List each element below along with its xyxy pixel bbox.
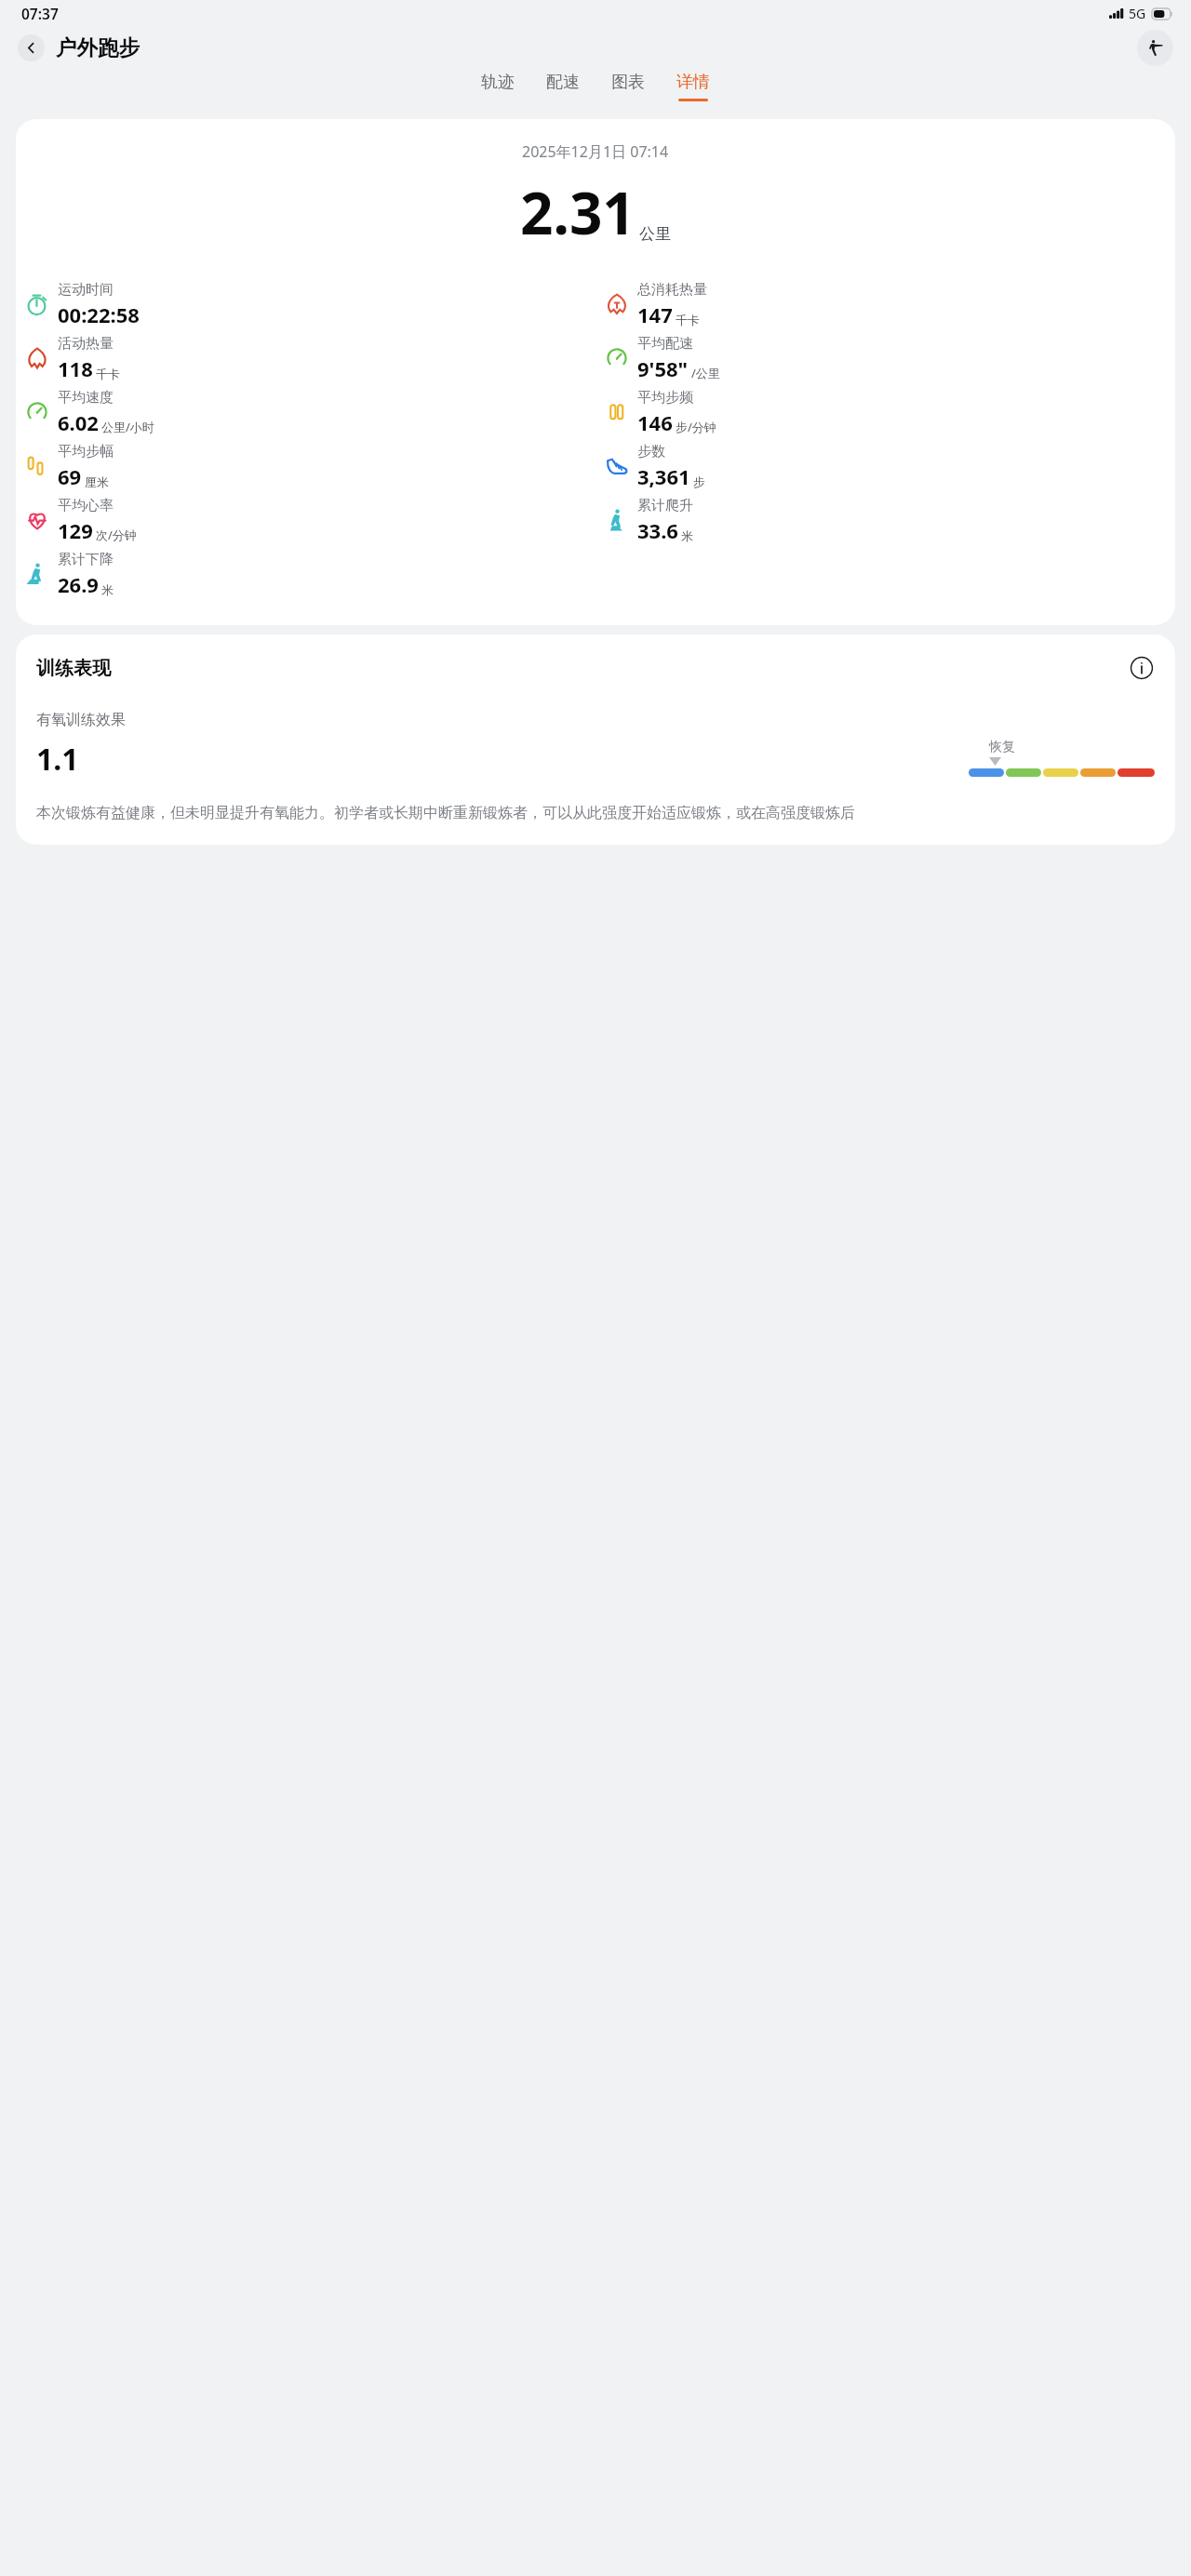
staticText: 2.31 bbox=[520, 173, 636, 251]
button[interactable]: 运动时间 bbox=[16, 277, 595, 331]
staticText: 147 bbox=[637, 300, 673, 328]
staticText: 米 bbox=[681, 528, 693, 543]
staticText: 07:37 bbox=[21, 4, 59, 23]
staticText: 详情 bbox=[676, 72, 710, 93]
staticText: 26.9 bbox=[58, 570, 99, 598]
button[interactable]: 轨迹 bbox=[481, 69, 515, 99]
staticText: 33.6 bbox=[637, 516, 678, 544]
staticText: 有氧训练效果 bbox=[36, 711, 126, 729]
staticText: 户外跑步 bbox=[56, 34, 140, 60]
staticText: 5G bbox=[1129, 5, 1146, 22]
button[interactable]: 平均配速 bbox=[595, 331, 1175, 385]
button[interactable]: 平均速度 bbox=[16, 385, 595, 439]
staticText: 累计下降 bbox=[58, 551, 114, 568]
staticText: 次/分钟 bbox=[96, 527, 137, 543]
staticText: 千卡 bbox=[96, 367, 120, 381]
button[interactable]: 步数 bbox=[595, 439, 1175, 493]
button[interactable]: 平均步幅 bbox=[16, 439, 595, 493]
button[interactable]: 平均心率 bbox=[16, 493, 595, 547]
staticText: 146 bbox=[637, 408, 673, 436]
staticText: 1.1 bbox=[36, 739, 79, 780]
staticText: 训练表现 bbox=[36, 657, 111, 680]
staticText: 步数 bbox=[637, 443, 665, 460]
button[interactable]: 累计下降 bbox=[16, 547, 595, 601]
staticText: 9'58" bbox=[637, 354, 689, 382]
staticText: 运动时间 bbox=[58, 281, 114, 299]
button[interactable]: Back bbox=[18, 34, 45, 61]
staticText: 00:22:58 bbox=[58, 300, 140, 328]
staticText: 2025年12月1日 07:14 bbox=[522, 141, 669, 162]
button[interactable]: 平均步频 bbox=[595, 385, 1175, 439]
staticText: 本次锻炼有益健康，但未明显提升有氧能力。初学者或长期中断重新锻炼者，可以从此强度… bbox=[36, 804, 855, 822]
staticText: /公里 bbox=[691, 365, 720, 381]
button[interactable]: Sport type bbox=[1137, 30, 1173, 66]
staticText: 平均心率 bbox=[58, 497, 114, 514]
staticText: 配速 bbox=[546, 72, 580, 93]
staticText: 千卡 bbox=[676, 313, 700, 327]
staticText: 69 bbox=[58, 462, 82, 490]
staticText: 累计爬升 bbox=[637, 497, 693, 514]
staticText: 118 bbox=[58, 354, 93, 382]
staticText: 米 bbox=[101, 582, 114, 597]
button[interactable]: 活动热量 bbox=[16, 331, 595, 385]
staticText: 图表 bbox=[611, 72, 645, 93]
staticText: 步/分钟 bbox=[676, 419, 716, 435]
button[interactable]: 详情 bbox=[676, 69, 710, 101]
button[interactable]: Info bbox=[1129, 655, 1155, 681]
staticText: 公里/小时 bbox=[101, 419, 154, 435]
staticText: 轨迹 bbox=[481, 72, 515, 93]
staticText: 步 bbox=[693, 474, 705, 489]
staticText: 平均步幅 bbox=[58, 443, 114, 460]
staticText: 总消耗热量 bbox=[637, 281, 707, 299]
button[interactable]: 图表 bbox=[611, 69, 645, 99]
staticText: 129 bbox=[58, 516, 93, 544]
staticText: 公里 bbox=[639, 224, 671, 244]
staticText: 平均配速 bbox=[637, 335, 693, 353]
staticText: 平均速度 bbox=[58, 389, 114, 407]
staticText: 平均步频 bbox=[637, 389, 693, 407]
staticText: 恢复 bbox=[989, 739, 1015, 755]
button[interactable]: 累计爬升 bbox=[595, 493, 1175, 547]
button[interactable]: 总消耗热量 bbox=[595, 277, 1175, 331]
button[interactable]: 配速 bbox=[546, 69, 580, 99]
staticText: 厘米 bbox=[85, 474, 109, 489]
staticText: 6.02 bbox=[58, 408, 99, 436]
staticText: 活动热量 bbox=[58, 335, 114, 353]
staticText: 3,361 bbox=[637, 462, 690, 490]
